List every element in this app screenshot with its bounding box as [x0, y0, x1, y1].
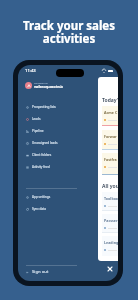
staticText: Sync data [32, 207, 46, 211]
staticText: 11:43 [25, 68, 36, 74]
button[interactable]: App settings [18, 191, 118, 203]
button[interactable]: Toolbox [102, 192, 118, 211]
staticText: Prospecting lists [32, 105, 56, 109]
staticText: Pipeline [32, 129, 44, 133]
button[interactable]: Leads [18, 113, 118, 125]
staticText: Leads [32, 117, 41, 121]
button[interactable]: Acme C [102, 106, 118, 126]
staticText: Track your sales activities [23, 18, 115, 47]
staticText: Today's [102, 97, 118, 104]
staticText: Leading [104, 240, 118, 245]
staticText: Connected on [34, 82, 48, 85]
staticText: mailercorp.wacctm.io [34, 85, 64, 89]
button[interactable]: Prospecting lists [18, 101, 118, 113]
button[interactable]: Sync data [18, 203, 118, 215]
button[interactable]: Client folders [18, 149, 118, 161]
staticText: All your [102, 183, 118, 190]
button[interactable]: Activity feed [18, 161, 118, 173]
staticText: Pacsser [104, 218, 118, 223]
staticText: App settings [32, 195, 51, 199]
staticText: Fastfra [104, 157, 117, 162]
staticText: Sign out [32, 269, 49, 275]
button[interactable]: Sign out [18, 266, 118, 278]
button[interactable]: Close [105, 264, 115, 274]
staticText: Activity feed [32, 165, 50, 169]
button[interactable]: Forwar [102, 130, 118, 150]
button[interactable]: Leading [102, 236, 118, 256]
staticText: Toolbox [104, 196, 118, 201]
staticText: Unassigned leads [32, 141, 58, 145]
staticText: Acme C [104, 110, 118, 115]
button[interactable]: Pacsser [102, 214, 118, 233]
button[interactable]: Fastfra [102, 153, 118, 175]
button[interactable]: Unassigned leads [18, 137, 118, 149]
staticText: Client folders [32, 153, 52, 157]
button[interactable]: Connected on [18, 79, 118, 91]
staticText: Forwar [104, 134, 117, 139]
button[interactable]: Pipeline [18, 125, 118, 137]
